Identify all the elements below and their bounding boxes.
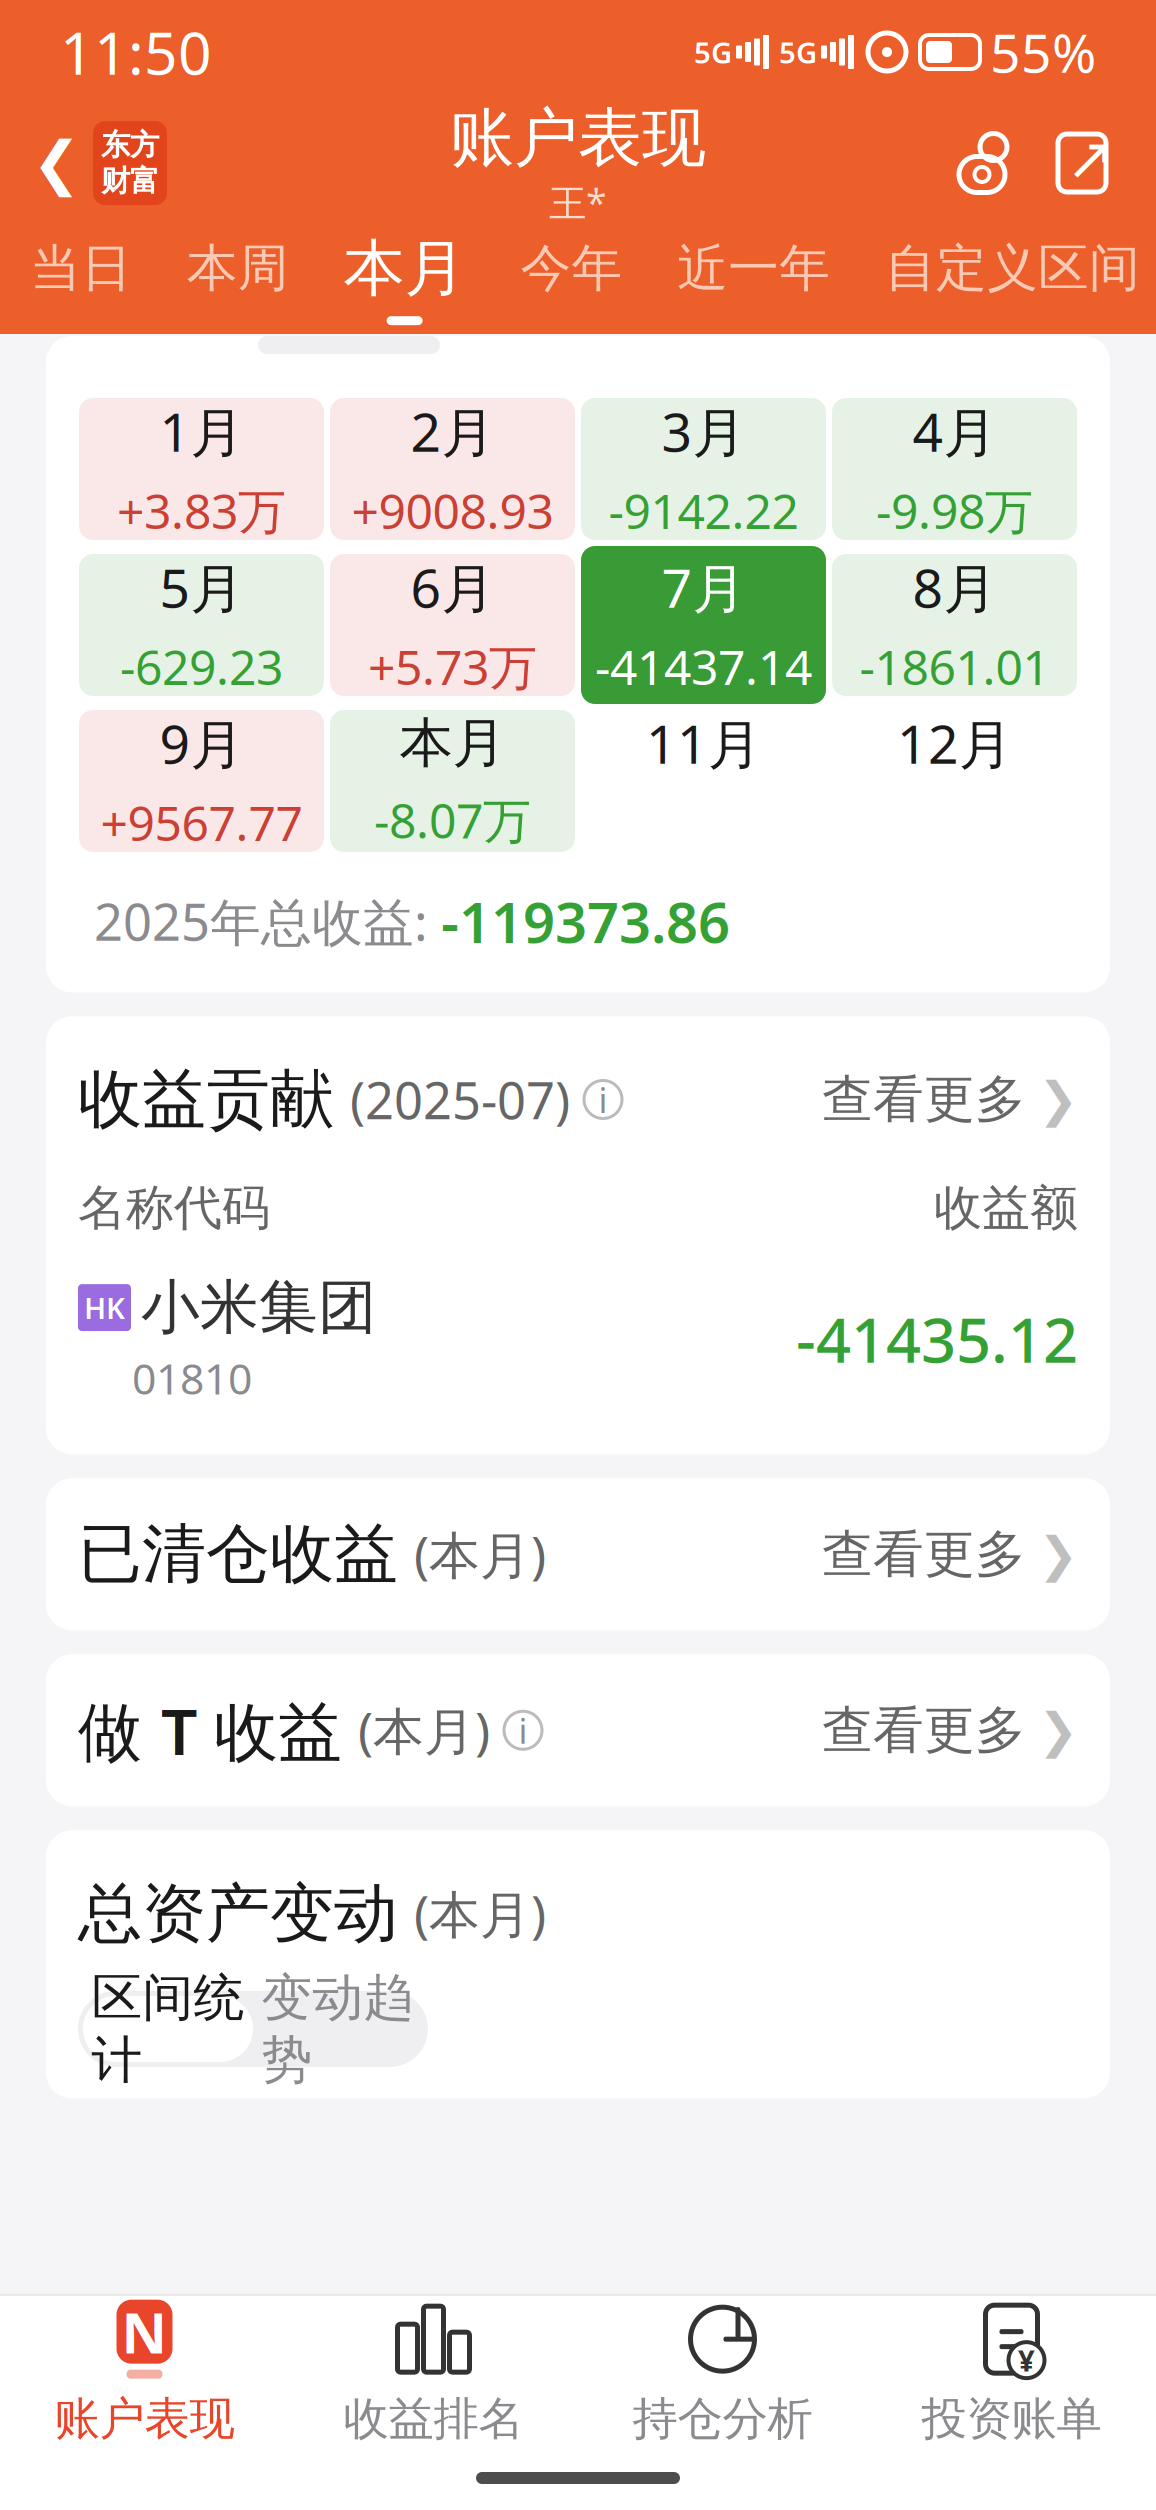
button[interactable]: 分享 <box>1032 107 1132 219</box>
staticText: 收益排名 <box>343 2391 523 2447</box>
staticText: -8.07万 <box>374 788 531 852</box>
button[interactable]: 12月 <box>832 710 1077 852</box>
staticText: ❯ <box>1038 1072 1078 1127</box>
staticText: 5G <box>694 32 732 71</box>
staticText: -9142.22 <box>608 478 798 542</box>
staticText: 已清仓收益 <box>78 1515 398 1594</box>
button[interactable]: 8月 <box>832 554 1077 696</box>
staticText: -629.23 <box>120 634 283 698</box>
button[interactable]: 3月 <box>581 398 826 540</box>
staticText: 当日 <box>30 237 132 300</box>
staticText: ❯ <box>1038 1527 1078 1581</box>
staticText: 11月 <box>646 708 761 778</box>
staticText: 区间统计 <box>91 1967 244 2091</box>
staticText: -1861.01 <box>859 634 1049 698</box>
staticText: 总资产变动 <box>78 1874 398 1953</box>
staticText: +3.83万 <box>117 478 286 542</box>
staticText: 4月 <box>912 396 996 466</box>
staticText: 6月 <box>410 552 494 622</box>
button[interactable]: 查看更多 <box>822 1513 1078 1595</box>
staticText: 收益额 <box>934 1179 1078 1238</box>
staticText: 5G <box>779 32 817 71</box>
staticText: 账户表现 <box>450 99 706 177</box>
staticText: i <box>518 1707 527 1753</box>
button[interactable]: 6月 <box>330 554 575 696</box>
staticText: (2025-07) <box>350 1066 570 1133</box>
button[interactable]: 5月 <box>79 554 324 696</box>
staticText: 8月 <box>912 552 996 622</box>
button[interactable]: 变动趋势 <box>253 1996 423 2062</box>
button[interactable]: 当日 <box>30 226 132 330</box>
staticText: 持仓分析 <box>632 2391 812 2447</box>
button[interactable]: 4月 <box>832 398 1077 540</box>
staticText: +9008.93 <box>351 478 553 542</box>
staticText: ❮ <box>32 130 81 196</box>
button[interactable]: 今年 <box>520 226 622 330</box>
button[interactable]: 持仓分析 <box>578 2296 867 2450</box>
staticText: 投资账单 <box>921 2391 1101 2447</box>
staticText: +9567.77 <box>100 790 302 854</box>
staticText: 本月 <box>399 710 505 776</box>
staticText: 小米集团 <box>141 1272 377 1344</box>
staticText: 做 T 收益 <box>78 1688 342 1773</box>
button[interactable]: 本月 <box>330 710 575 852</box>
staticText: N <box>121 2294 167 2369</box>
button[interactable]: 返回 <box>0 107 167 219</box>
button[interactable]: 查看更多 <box>822 1058 1078 1141</box>
staticText: HK <box>84 1288 125 1327</box>
staticText: 1月 <box>159 396 243 466</box>
staticText: +5.73万 <box>368 634 537 698</box>
staticText: 名称代码 <box>78 1179 270 1238</box>
staticText: 变动趋势 <box>261 1967 414 2091</box>
staticText: 查看更多 <box>822 1068 1026 1131</box>
staticText: 12月 <box>897 708 1012 778</box>
staticText: 2月 <box>410 396 494 466</box>
staticText: 王* <box>549 177 607 227</box>
button[interactable]: 收益排名 <box>289 2296 578 2450</box>
staticText: 收益贡献 <box>78 1060 334 1139</box>
staticText: (本月) <box>358 1697 490 1764</box>
button[interactable]: HK <box>78 1238 1078 1426</box>
button[interactable]: 2月 <box>330 398 575 540</box>
staticText: (本月) <box>414 1880 546 1947</box>
staticText: 东方 <box>101 127 159 163</box>
button[interactable]: N <box>0 2296 289 2450</box>
staticText: -41437.14 <box>595 634 812 698</box>
button[interactable]: 11月 <box>581 710 826 852</box>
staticText: 11:50 <box>60 13 212 91</box>
staticText: 本月 <box>344 231 466 306</box>
button[interactable]: 区间统计 <box>83 1996 253 2062</box>
button[interactable]: 自定义区间 <box>885 226 1140 330</box>
staticText: 近一年 <box>677 237 830 300</box>
staticText: 5月 <box>159 552 243 622</box>
staticText: 7月 <box>661 552 745 622</box>
staticText: i <box>598 1076 607 1122</box>
staticText: 查看更多 <box>822 1699 1026 1761</box>
button[interactable]: 本周 <box>187 226 289 330</box>
staticText: -9.98万 <box>876 478 1033 542</box>
staticText: (本月) <box>414 1521 546 1588</box>
staticText: 本周 <box>187 237 289 300</box>
staticText: 01810 <box>132 1350 252 1406</box>
staticText: 55% <box>990 17 1096 87</box>
staticText: 财富 <box>101 163 159 199</box>
staticText: ↗ <box>1066 126 1115 192</box>
staticText: 今年 <box>520 237 622 300</box>
staticText: -41435.12 <box>796 1298 1078 1380</box>
staticText: -119373.86 <box>441 884 730 958</box>
staticText: 2025年总收益: <box>94 887 441 955</box>
staticText: 9月 <box>159 708 243 778</box>
staticText: 3月 <box>661 396 745 466</box>
button[interactable]: 本月 <box>344 226 466 330</box>
staticText: ¥ <box>1018 2341 1035 2380</box>
button[interactable]: 1月 <box>79 398 324 540</box>
staticText: 自定义区间 <box>885 237 1140 300</box>
button[interactable]: 7月 <box>581 546 826 704</box>
button[interactable]: 近一年 <box>677 226 830 330</box>
button[interactable]: ¥ <box>867 2296 1156 2450</box>
staticText: ❯ <box>1038 1703 1078 1757</box>
button[interactable]: 9月 <box>79 710 324 852</box>
staticText: 查看更多 <box>822 1523 1026 1585</box>
button[interactable]: 查看更多 <box>822 1689 1078 1771</box>
button[interactable]: 客服 <box>932 107 1032 219</box>
